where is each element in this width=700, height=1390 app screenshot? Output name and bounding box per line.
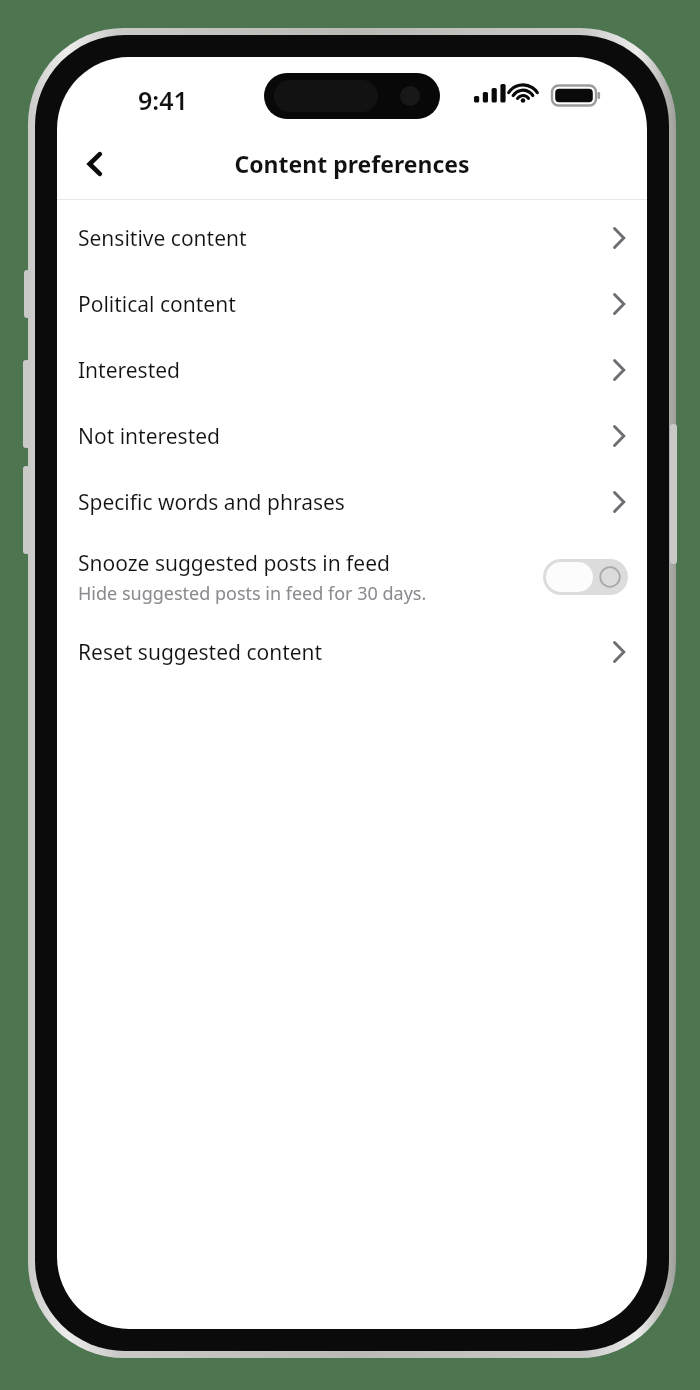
staticText: Snooze suggested posts in feed — [78, 549, 390, 578]
staticText: 9:41 — [138, 83, 188, 117]
button[interactable]: Specific words and phrases — [57, 469, 647, 535]
staticText: Reset suggested content — [78, 638, 611, 667]
staticText: Not interested — [78, 422, 611, 451]
button[interactable]: Interested — [57, 337, 647, 403]
staticText: Hide suggested posts in feed for 30 days… — [78, 581, 427, 606]
button[interactable]: Snooze suggested posts in feed — [57, 535, 647, 619]
staticText: Political content — [78, 290, 611, 319]
button[interactable]: Sensitive content — [57, 205, 647, 271]
button[interactable]: Not interested — [57, 403, 647, 469]
staticText: Content preferences — [57, 148, 647, 179]
staticText: Specific words and phrases — [78, 488, 611, 517]
staticText: Sensitive content — [78, 224, 611, 253]
staticText: Interested — [78, 356, 611, 385]
button[interactable]: Political content — [57, 271, 647, 337]
button[interactable]: Snooze suggested posts in feed toggle — [543, 559, 628, 595]
button[interactable]: Reset suggested content — [57, 619, 647, 685]
button[interactable]: Back — [65, 134, 125, 194]
